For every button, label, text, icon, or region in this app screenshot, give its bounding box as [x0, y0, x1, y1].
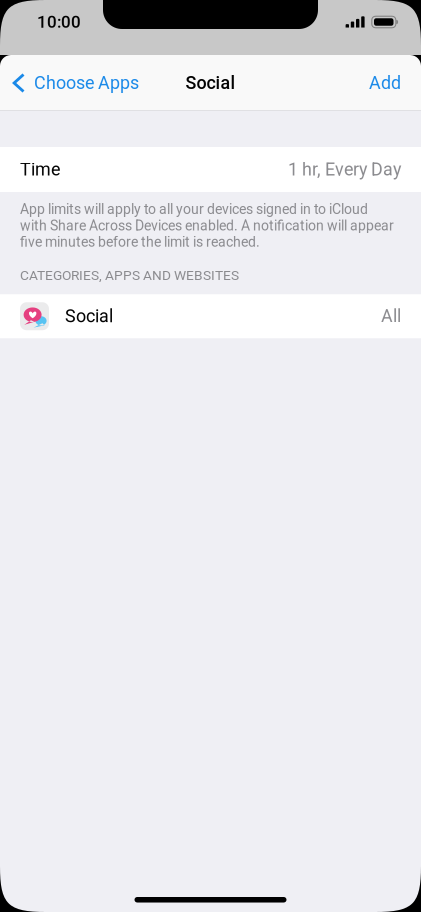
staticText: 1 hr, Every Day [288, 159, 401, 180]
staticText: Add [369, 72, 401, 93]
staticText: Social [65, 306, 113, 327]
button[interactable]: Add [369, 61, 421, 104]
staticText: 10:00 [37, 12, 81, 32]
button[interactable]: Time [0, 147, 421, 192]
staticText: Choose Apps [34, 72, 139, 93]
button[interactable]: Choose Apps [0, 61, 139, 104]
staticText: Social [185, 72, 235, 93]
button[interactable]: Social [0, 294, 421, 338]
staticText: All [381, 306, 401, 327]
staticText: Time [20, 159, 60, 180]
staticText: CATEGORIES, APPS AND WEBSITES [20, 267, 239, 283]
staticText: App limits will apply to all your device… [20, 201, 394, 250]
